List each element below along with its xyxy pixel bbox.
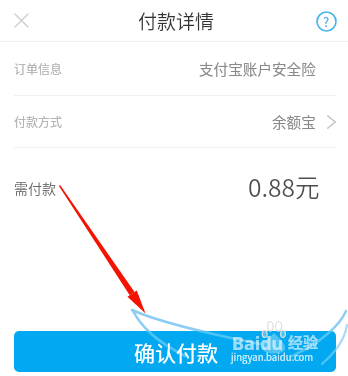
button[interactable]: Close [0,0,41,41]
staticText: 支付宝账户安全险 [199,58,316,79]
staticText: 确认付款 [134,337,218,367]
staticText: 需付款 [14,178,56,198]
button[interactable]: 确认付款 [14,331,336,372]
staticText: jingyan.baidu.com [231,350,314,364]
button[interactable]: Help [311,6,341,36]
staticText: Baidu [232,331,284,356]
button[interactable]: 订单信息 [0,42,348,95]
staticText: 订单信息 [14,60,63,77]
button[interactable]: 付款方式 [0,96,348,147]
staticText: 付款方式 [14,113,63,130]
staticText: 0.88元 [248,169,320,204]
staticText: 余额宝 [272,111,316,132]
staticText: ? [323,12,330,31]
staticText: 经验 [288,331,319,353]
staticText: 付款详情 [138,7,215,35]
